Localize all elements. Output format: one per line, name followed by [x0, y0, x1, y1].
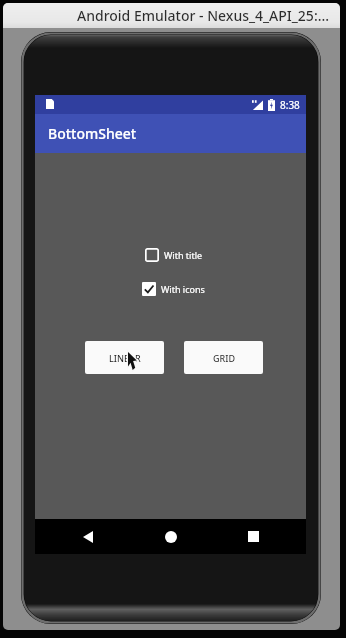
staticText: With title — [164, 249, 203, 261]
staticText: BottomSheet — [48, 124, 137, 143]
staticText: 8:38 — [280, 98, 300, 112]
button[interactable]: Recent apps — [223, 519, 283, 554]
button[interactable]: GRID — [184, 341, 263, 374]
staticText: With icons — [161, 283, 205, 295]
staticText: GRID — [213, 352, 235, 364]
button[interactable]: With title — [145, 248, 203, 262]
staticText: LINEAR — [109, 352, 141, 364]
staticText: Android Emulator - Nexus_4_API_25:... — [77, 6, 330, 25]
button[interactable]: Back — [58, 519, 118, 554]
button[interactable]: With icons — [142, 282, 205, 296]
button[interactable]: Home — [141, 519, 201, 554]
button[interactable]: LINEAR — [85, 341, 164, 374]
